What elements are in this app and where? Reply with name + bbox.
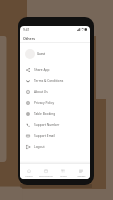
staticText: Support Email [34, 134, 56, 138]
button[interactable]: Others [72, 164, 90, 179]
button[interactable]: Support Email [20, 130, 90, 141]
button[interactable]: Support Number [20, 119, 90, 130]
button[interactable]: Privacy Policy [20, 97, 90, 108]
staticText: Privacy Policy [34, 101, 55, 105]
staticText: About Us [34, 90, 48, 94]
staticText: Others [23, 36, 36, 41]
button[interactable]: Logout [20, 141, 90, 152]
button[interactable]: About Us [20, 86, 90, 97]
staticText: Menu [60, 174, 67, 177]
staticText: Support Number [34, 123, 60, 127]
staticText: Table Booking [34, 112, 56, 116]
staticText: 9:41 [23, 28, 30, 32]
staticText: Guest [37, 52, 46, 56]
staticText: Home [25, 174, 33, 177]
staticText: Others [77, 174, 86, 177]
button[interactable]: Table Booking [20, 108, 90, 119]
button[interactable]: Guest [20, 46, 90, 62]
staticText: Logout [34, 145, 45, 149]
button[interactable]: Home [20, 164, 37, 179]
button[interactable]: Share App [20, 64, 90, 75]
staticText: Terms & Conditions [34, 79, 64, 83]
button[interactable]: Menu [54, 164, 72, 179]
staticText: Share App [34, 68, 50, 72]
button[interactable]: Reservation [37, 164, 54, 179]
staticText: Reservation [39, 174, 53, 177]
button[interactable]: Terms & Conditions [20, 75, 90, 86]
